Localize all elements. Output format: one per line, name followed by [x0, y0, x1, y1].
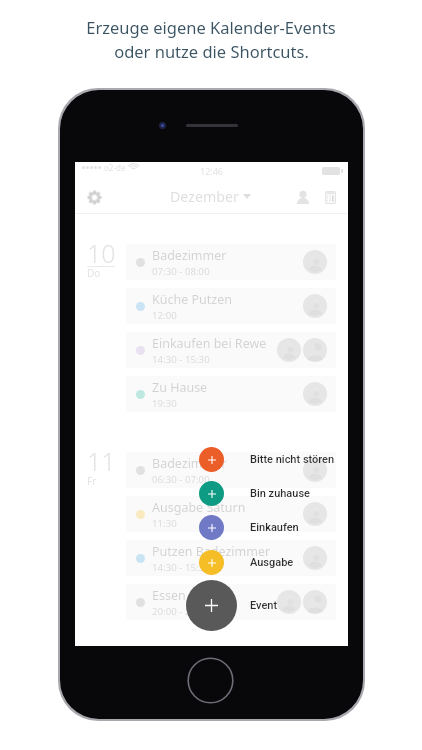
- staticText: Einkaufen: [250, 521, 299, 534]
- button[interactable]: Event hinzufügen: [186, 580, 237, 631]
- staticText: Event: [250, 599, 278, 612]
- button[interactable]: Küche Putzen: [126, 288, 336, 324]
- staticText: 11: [87, 444, 116, 478]
- button[interactable]: Zu Hause: [126, 376, 336, 412]
- button[interactable]: Einkaufen bei Rewe: [126, 332, 336, 368]
- staticText: Erzeuge eigene Kalender-Events: [86, 16, 336, 38]
- staticText: 11:30: [152, 517, 177, 530]
- staticText: Fr: [87, 474, 97, 488]
- staticText: o2-de: [104, 162, 126, 173]
- staticText: Putzen Badezimmer: [152, 543, 271, 560]
- button[interactable]: Home: [187, 657, 234, 704]
- staticText: Bitte nicht stören: [250, 453, 335, 466]
- staticText: Einkaufen bei Rewe: [152, 335, 267, 352]
- staticText: 12:00: [152, 309, 177, 322]
- staticText: Dezember: [170, 187, 239, 206]
- button[interactable]: Essen gehen: [126, 584, 336, 620]
- button[interactable]: Badezimmer: [126, 452, 336, 488]
- staticText: 14:30 - 15:30: [152, 353, 210, 366]
- button[interactable]: Bitte nicht stören: [199, 447, 224, 472]
- button[interactable]: Einkaufen: [250, 521, 299, 534]
- staticText: 12:46: [200, 165, 224, 177]
- button[interactable]: Dezember: [166, 184, 255, 209]
- button[interactable]: Badezimmer: [126, 244, 336, 280]
- button[interactable]: Ausgabe: [199, 550, 224, 575]
- button[interactable]: Kontakte: [292, 186, 314, 208]
- button[interactable]: Bitte nicht stören: [250, 453, 335, 466]
- staticText: Do: [87, 266, 101, 280]
- staticText: oder nutze die Shortcuts.: [114, 40, 309, 62]
- staticText: 07:30 - 08:00: [152, 265, 210, 278]
- staticText: 20:00 - 22:00: [152, 605, 210, 618]
- staticText: Essen gehen: [152, 587, 227, 604]
- button[interactable]: Bin zuhause: [199, 481, 224, 506]
- staticText: Ausgabe Saturn: [152, 499, 246, 516]
- staticText: 14:30 - 15:30: [152, 561, 210, 574]
- staticText: 19:30: [152, 397, 177, 410]
- button[interactable]: Einstellungen: [81, 184, 107, 210]
- button[interactable]: Bin zuhause: [250, 487, 310, 500]
- staticText: 06:30 - 07:00: [152, 473, 210, 486]
- button[interactable]: Ausgabe Saturn: [126, 496, 336, 532]
- staticText: Badezimmer: [152, 247, 227, 264]
- staticText: Ausgabe: [250, 556, 294, 569]
- button[interactable]: Event: [250, 599, 278, 612]
- staticText: 10: [87, 236, 116, 270]
- button[interactable]: Einkaufen: [199, 515, 224, 540]
- staticText: Zu Hause: [152, 379, 208, 396]
- staticText: Bin zuhause: [250, 487, 310, 500]
- staticText: Küche Putzen: [152, 291, 232, 308]
- button[interactable]: Putzen Badezimmer: [126, 540, 336, 576]
- button[interactable]: Rechner: [319, 186, 341, 208]
- staticText: Badezimmer: [152, 455, 227, 472]
- button[interactable]: Ausgabe: [250, 556, 294, 569]
